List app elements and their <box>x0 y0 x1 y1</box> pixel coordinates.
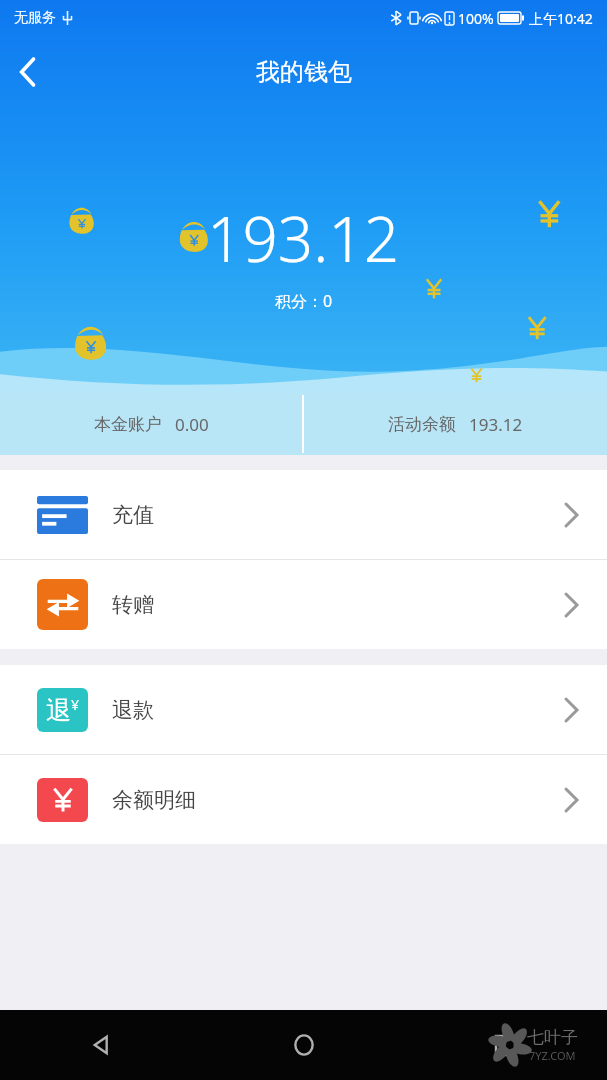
staticText: 我的钱包 <box>256 57 352 87</box>
staticText: 7YZ.COM <box>529 1048 576 1063</box>
staticText: 193.12 <box>207 196 400 280</box>
staticText: 0.00 <box>175 413 209 436</box>
staticText: 活动余额 <box>388 414 456 435</box>
button[interactable]: 退 <box>0 665 607 754</box>
staticText: 本金账户 <box>94 414 162 435</box>
button[interactable]: 最近任务 <box>405 1010 607 1080</box>
staticText: 转赠 <box>112 592 154 618</box>
staticText: ¥ <box>71 695 80 714</box>
button[interactable]: 转赠 <box>0 560 607 649</box>
staticText: 余额明细 <box>112 787 196 813</box>
staticText: 无服务 <box>14 9 56 27</box>
staticText: 退 <box>46 695 71 726</box>
button[interactable]: 余额明细 <box>0 755 607 844</box>
staticText: 积分：0 <box>275 290 333 312</box>
button[interactable]: 返回 <box>0 1010 203 1080</box>
staticText: 退款 <box>112 697 154 723</box>
button[interactable]: 活动余额 <box>304 393 607 455</box>
staticText: 上午10:42 <box>529 9 593 28</box>
button[interactable]: 主屏幕 <box>203 1010 405 1080</box>
button[interactable]: 返回 <box>0 44 56 100</box>
staticText: 充值 <box>112 502 154 528</box>
button[interactable]: 本金账户 <box>0 393 302 455</box>
staticText: 193.12 <box>469 413 523 436</box>
staticText: 100% <box>458 9 494 28</box>
button[interactable]: 充值 <box>0 470 607 559</box>
staticText: 七叶子 <box>527 1027 578 1048</box>
